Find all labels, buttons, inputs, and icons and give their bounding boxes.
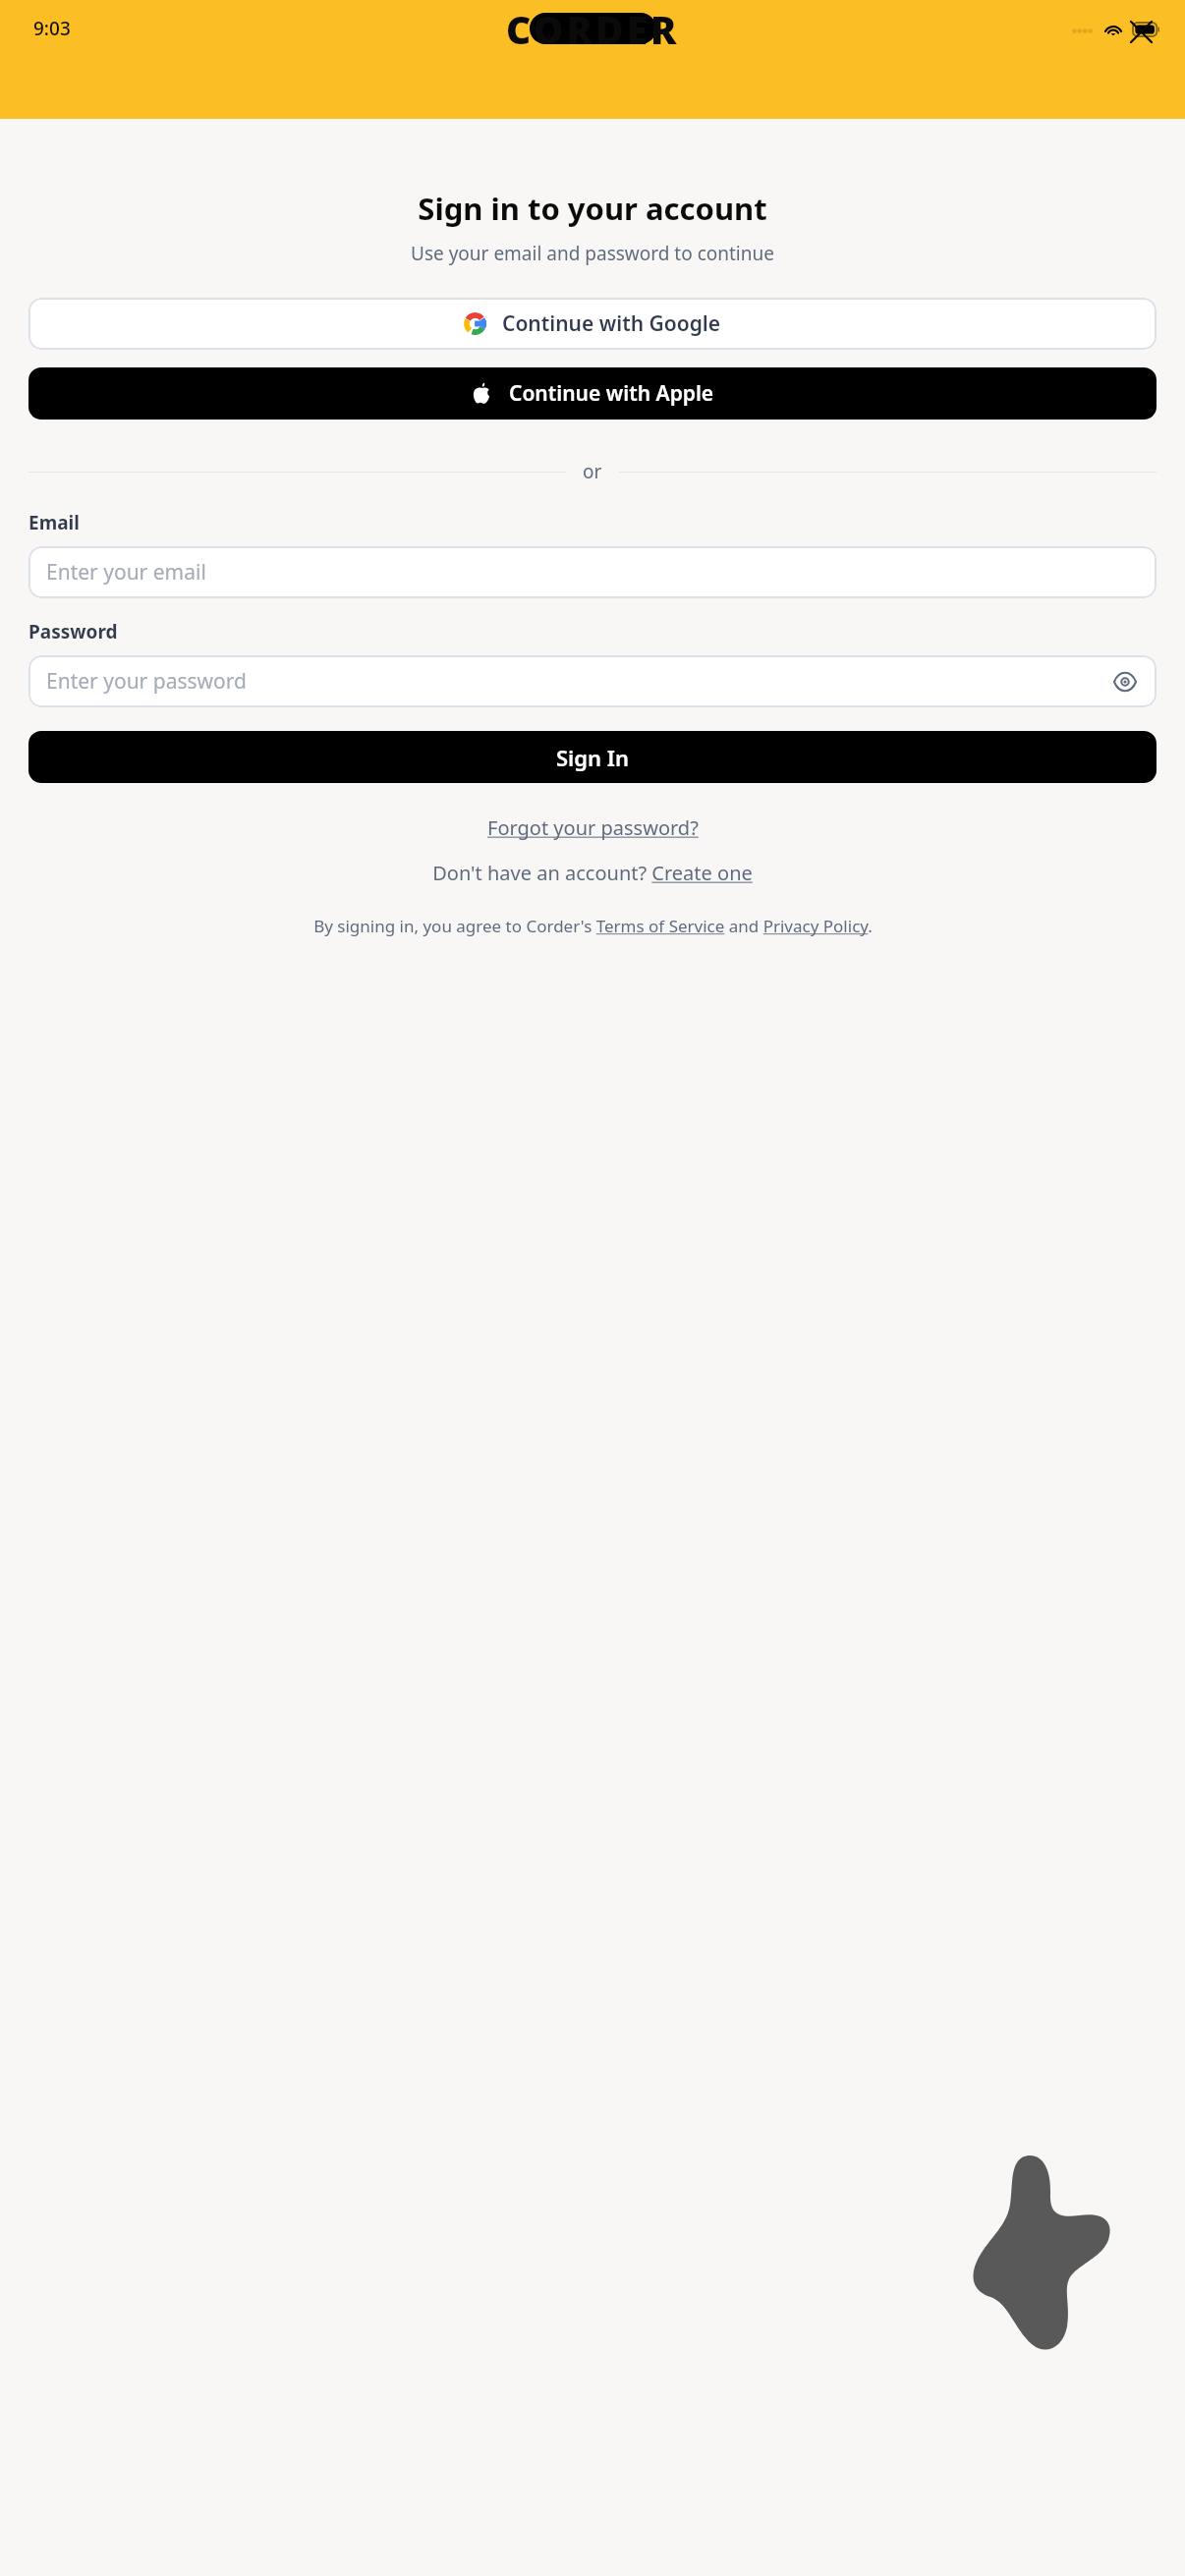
staticText: or	[583, 459, 602, 484]
button[interactable]: Forgot your password?	[481, 812, 705, 844]
button[interactable]: Sign In	[28, 731, 1157, 783]
staticText: Enter your password	[46, 667, 247, 696]
staticText: Continue with Apple	[509, 379, 714, 408]
button[interactable]: Show password	[1105, 662, 1145, 701]
staticText: Continue with Google	[502, 309, 721, 338]
button[interactable]: Continue with Google	[28, 298, 1157, 350]
staticText: Enter your email	[46, 558, 206, 587]
staticText: CORDER	[506, 3, 680, 55]
staticText: Use your email and password to continue	[411, 241, 774, 266]
staticText: Sign in to your account	[418, 188, 767, 229]
button[interactable]: Don't have an account? Create one	[426, 857, 759, 889]
staticText: Forgot your password?	[487, 814, 699, 841]
staticText: By signing in, you agree to Corder's Ter…	[313, 915, 873, 937]
staticText: Sign In	[556, 743, 630, 772]
button[interactable]: Enter your email	[28, 546, 1157, 598]
button[interactable]: Continue with Apple	[28, 367, 1157, 420]
staticText: Password	[28, 619, 1157, 644]
button[interactable]: Close	[1118, 9, 1163, 54]
staticText: 9:03	[33, 16, 71, 41]
staticText: Don't have an account? Create one	[432, 860, 753, 886]
button[interactable]: By signing in, you agree to Corder's Ter…	[28, 915, 1157, 937]
staticText: Email	[28, 510, 1157, 535]
button[interactable]: Enter your password	[28, 655, 1157, 707]
